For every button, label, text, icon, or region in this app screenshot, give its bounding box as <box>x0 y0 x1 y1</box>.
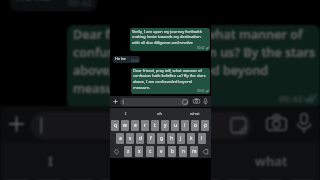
staticText: o <box>194 122 197 129</box>
staticText: m <box>192 148 197 155</box>
staticText: l <box>201 135 203 142</box>
staticText: 00:42 <box>197 89 205 93</box>
staticText: n <box>182 148 185 155</box>
staticText: I <box>125 111 127 117</box>
button[interactable]: u <box>171 120 179 131</box>
button[interactable]: j <box>177 133 185 144</box>
button[interactable]: k <box>187 133 195 144</box>
button[interactable]: Verily, I am upon my journey forthwith m… <box>130 28 210 51</box>
button[interactable]: m <box>190 146 198 157</box>
staticText: q <box>114 122 117 129</box>
button[interactable]: e <box>131 120 139 131</box>
button[interactable]: c <box>146 146 154 157</box>
staticText: I <box>48 152 53 170</box>
button[interactable]: z <box>124 146 132 157</box>
button[interactable]: Attach <box>6 110 27 138</box>
button[interactable]: w <box>121 120 129 131</box>
staticText: v <box>160 148 163 155</box>
button[interactable]: y <box>161 120 169 131</box>
staticText: b <box>171 148 174 155</box>
staticText: s <box>129 135 132 142</box>
staticText: Dear friend, pray tell, what manner of c… <box>133 68 206 91</box>
staticText: p <box>204 122 207 129</box>
staticText: 00:42 <box>279 92 303 105</box>
staticText: w <box>123 122 127 129</box>
staticText: t <box>154 122 156 129</box>
button[interactable]: h <box>167 133 175 144</box>
button[interactable]: Dear friend, pray tell, what manner of c… <box>131 68 210 94</box>
staticText: k <box>190 135 193 142</box>
button[interactable] <box>31 112 251 139</box>
button[interactable]: He he <box>113 56 140 63</box>
staticText: u <box>174 122 177 129</box>
button[interactable]: g <box>157 133 165 144</box>
staticText: i <box>184 122 186 129</box>
staticText: c <box>149 148 152 155</box>
staticText: j <box>180 135 182 142</box>
staticText: y <box>164 122 167 129</box>
staticText: He he <box>115 56 126 61</box>
staticText: d <box>139 135 142 142</box>
button[interactable]: Dear friend, pray tell, what manner of c… <box>67 25 320 109</box>
button[interactable]: l <box>198 133 206 144</box>
button[interactable]: He he <box>10 0 97 11</box>
button[interactable]: Voice message <box>203 98 208 105</box>
staticText: r <box>144 122 146 129</box>
button[interactable]: b <box>168 146 176 157</box>
staticText: oh <box>157 111 163 117</box>
button[interactable]: Backspace <box>201 146 210 157</box>
staticText: He he <box>15 0 51 4</box>
staticText: Verily, I am upon my journey forthwith m… <box>132 29 203 46</box>
staticText: 00:42 <box>197 46 205 50</box>
staticText: 00:42 <box>68 0 92 9</box>
button[interactable]: o <box>191 120 199 131</box>
button[interactable]: s <box>126 133 134 144</box>
staticText: g <box>160 135 163 142</box>
staticText: x <box>138 148 141 155</box>
button[interactable] <box>120 98 189 106</box>
button[interactable]: p <box>201 120 209 131</box>
button[interactable]: Shift <box>112 146 121 157</box>
button[interactable]: Voice message <box>296 112 312 134</box>
button[interactable]: r <box>141 120 149 131</box>
staticText: a <box>119 135 122 142</box>
staticText: z <box>127 148 130 155</box>
button[interactable]: v <box>157 146 165 157</box>
staticText: 00:42 <box>131 59 139 63</box>
staticText: Dear friend, pray tell, what manner of c… <box>73 26 316 97</box>
button[interactable]: Camera <box>193 98 200 104</box>
staticText: oh <box>151 152 168 170</box>
button[interactable]: d <box>136 133 144 144</box>
button[interactable]: Camera <box>266 113 287 133</box>
staticText: f <box>150 135 152 142</box>
staticText: what <box>190 111 200 117</box>
button[interactable]: a <box>116 133 124 144</box>
staticText: h <box>170 135 173 142</box>
button[interactable]: i <box>181 120 189 131</box>
button[interactable]: q <box>111 120 119 131</box>
button[interactable]: x <box>135 146 143 157</box>
button[interactable]: f <box>147 133 155 144</box>
button[interactable]: t <box>151 120 159 131</box>
button[interactable]: n <box>179 146 187 157</box>
staticText: e <box>134 122 137 129</box>
staticText: what <box>255 152 288 170</box>
button[interactable]: Attach <box>112 97 119 106</box>
